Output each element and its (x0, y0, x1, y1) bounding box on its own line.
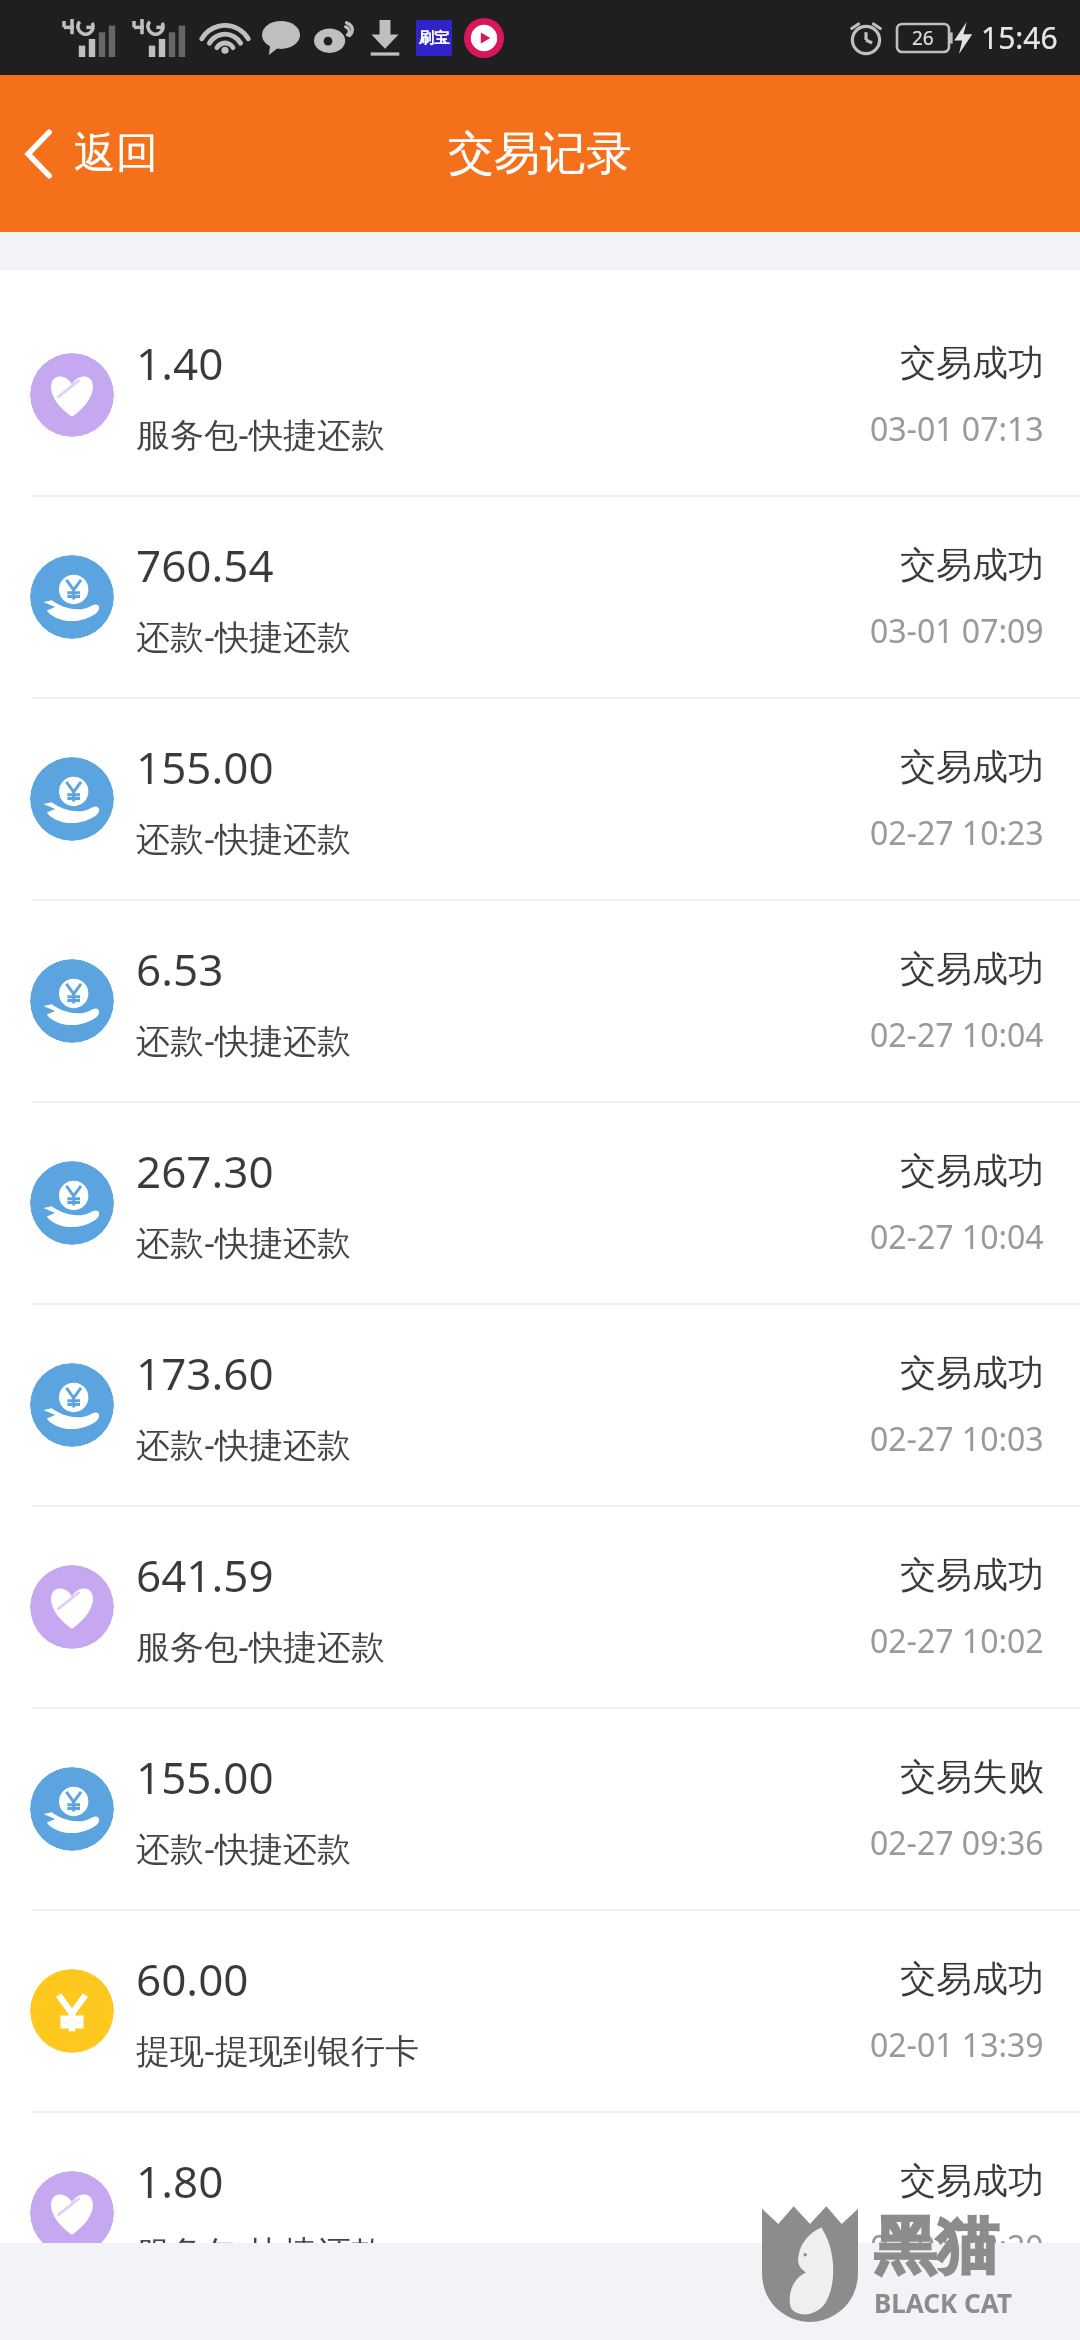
staticText: 黑猫 (874, 2207, 998, 2285)
button[interactable]: 760.54 (0, 497, 1080, 697)
staticText: 02-01 13:20 (870, 2225, 1044, 2269)
staticText: 交易记录 (448, 125, 632, 183)
staticText: 返回 (74, 127, 158, 180)
staticText: 760.54 (136, 535, 274, 595)
button[interactable]: 60.00 (0, 1911, 1080, 2111)
staticText: 02-01 13:39 (870, 2023, 1044, 2067)
staticText: 服务包-快捷还款 (136, 2229, 385, 2275)
staticText: 03-01 07:13 (870, 407, 1044, 451)
staticText: 1.40 (136, 333, 224, 393)
staticText: 02-27 10:02 (870, 1619, 1044, 1663)
button[interactable]: 1.40 (0, 295, 1080, 495)
staticText: 还款-快捷还款 (136, 1017, 351, 1063)
staticText: 173.60 (136, 1343, 274, 1403)
staticText: 还款-快捷还款 (136, 613, 351, 659)
button[interactable]: 155.00 (0, 1709, 1080, 1909)
button[interactable]: 155.00 (0, 699, 1080, 899)
staticText: 交易成功 (900, 1148, 1044, 1193)
staticText: 交易成功 (900, 946, 1044, 991)
staticText: 1.80 (136, 2151, 224, 2211)
staticText: 267.30 (136, 1141, 274, 1201)
button[interactable]: 173.60 (0, 1305, 1080, 1505)
staticText: 641.59 (136, 1545, 274, 1605)
staticText: 26 (912, 25, 934, 51)
staticText: 155.00 (136, 737, 274, 797)
staticText: 还款-快捷还款 (136, 815, 351, 861)
staticText: BLACK CAT (874, 2285, 1012, 2320)
staticText: 02-27 10:03 (870, 1417, 1044, 1461)
button[interactable]: 6.53 (0, 901, 1080, 1101)
staticText: 服务包-快捷还款 (136, 411, 385, 457)
button[interactable]: 641.59 (0, 1507, 1080, 1707)
staticText: 交易成功 (900, 1350, 1044, 1395)
staticText: 6.53 (136, 939, 224, 999)
staticText: 还款-快捷还款 (136, 1421, 351, 1467)
staticText: 还款-快捷还款 (136, 1219, 351, 1265)
staticText: 02-27 10:04 (870, 1013, 1044, 1057)
staticText: 02-27 10:23 (870, 811, 1044, 855)
staticText: 提现-提现到银行卡 (136, 2027, 419, 2073)
staticText: 155.00 (136, 1747, 274, 1807)
staticText: 刷宝 (419, 29, 449, 48)
staticText: 服务包-快捷还款 (136, 1623, 385, 1669)
button[interactable]: 267.30 (0, 1103, 1080, 1303)
button[interactable]: 返回 (0, 75, 184, 232)
staticText: 还款-快捷还款 (136, 1825, 351, 1871)
staticText: 交易失败 (900, 1754, 1044, 1799)
staticText: 60.00 (136, 1949, 249, 2009)
staticText: 03-01 07:09 (870, 609, 1044, 653)
button[interactable]: 1.80 (0, 2113, 1080, 2313)
staticText: 交易成功 (900, 744, 1044, 789)
staticText: 交易成功 (900, 1552, 1044, 1597)
staticText: 交易成功 (900, 340, 1044, 385)
staticText: 交易成功 (900, 2158, 1044, 2203)
staticText: 交易成功 (900, 1956, 1044, 2001)
staticText: 02-27 10:04 (870, 1215, 1044, 1259)
staticText: 15:46 (981, 17, 1058, 58)
staticText: 交易成功 (900, 542, 1044, 587)
staticText: 02-27 09:36 (870, 1821, 1044, 1865)
